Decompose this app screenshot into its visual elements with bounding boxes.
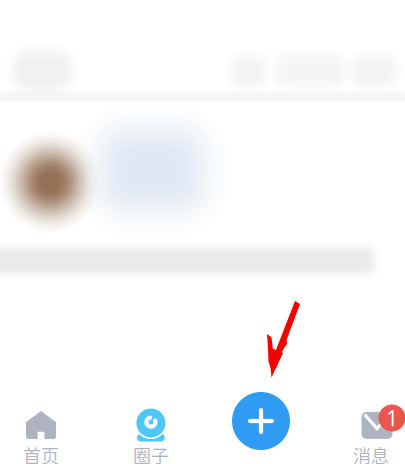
- staticText: 消息: [353, 442, 389, 464]
- button[interactable]: Create post: [232, 392, 290, 450]
- button[interactable]: 圈子: [113, 411, 189, 464]
- button[interactable]: 首页: [3, 411, 79, 464]
- staticText: 圈子: [133, 442, 169, 464]
- button[interactable]: 1: [333, 411, 405, 464]
- staticText: 1: [386, 404, 398, 432]
- staticText: 首页: [23, 442, 59, 464]
